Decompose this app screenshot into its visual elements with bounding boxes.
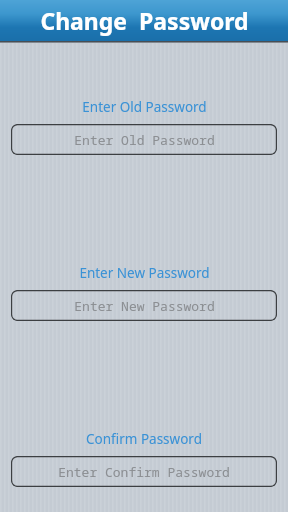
staticText: Enter Old Password [74, 131, 215, 149]
button[interactable]: Enter Old Password [11, 124, 277, 155]
staticText: Change Password [40, 5, 249, 36]
staticText: Enter New Password [79, 264, 210, 282]
staticText: Confirm Password [86, 430, 202, 448]
staticText: Enter New Password [74, 297, 215, 315]
button[interactable]: Enter Confirm Password [11, 456, 277, 487]
staticText: Enter Confirm Password [58, 463, 230, 481]
button[interactable]: Enter New Password [11, 290, 277, 321]
staticText: Enter Old Password [82, 98, 207, 116]
